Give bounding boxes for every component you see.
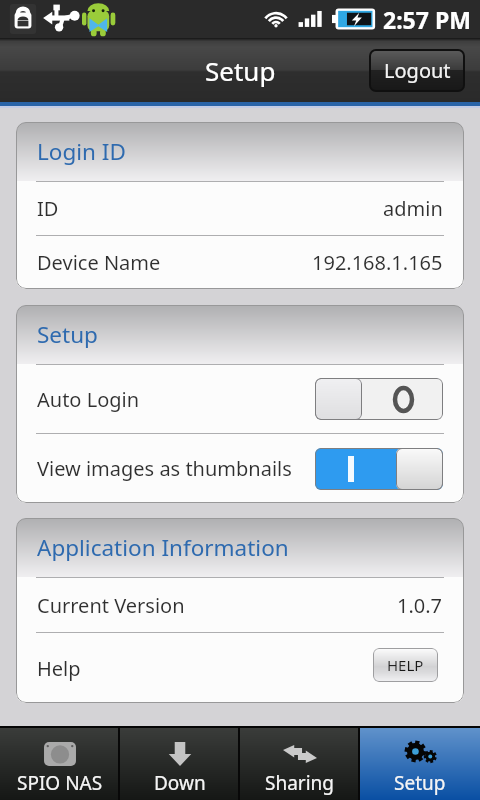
button[interactable]: Sharing xyxy=(240,728,360,800)
button[interactable]: Logout xyxy=(371,51,463,90)
button[interactable]: Device Name xyxy=(16,235,464,289)
other: Sharing xyxy=(283,745,317,763)
staticText: admin xyxy=(383,195,443,222)
other: SPIO NAS xyxy=(43,742,77,766)
button[interactable]: Current Version xyxy=(16,577,464,632)
staticText: 192.168.1.165 xyxy=(312,249,443,276)
staticText: Setup xyxy=(205,53,276,88)
staticText: View images as thumbnails xyxy=(37,455,292,482)
staticText: Login ID xyxy=(37,136,126,167)
staticText: Setup xyxy=(394,770,446,796)
staticText: SPIO NAS xyxy=(17,770,103,796)
staticText: Logout xyxy=(384,57,451,84)
staticText: Sharing xyxy=(265,770,335,796)
staticText: 2:57 PM xyxy=(383,4,471,35)
staticText: Device Name xyxy=(37,249,161,276)
button[interactable]: Help xyxy=(16,632,464,703)
staticText: ID xyxy=(37,195,59,222)
staticText: HELP xyxy=(387,655,424,675)
button[interactable]: Setup xyxy=(360,728,480,800)
other: Setup xyxy=(401,738,439,770)
button[interactable]: HELP xyxy=(373,648,438,682)
staticText: Setup xyxy=(37,319,98,350)
button[interactable] xyxy=(315,378,443,420)
staticText: Application Information xyxy=(37,532,289,563)
button[interactable]: SPIO NAS xyxy=(0,728,120,800)
staticText: Auto Login xyxy=(37,386,140,413)
staticText: 1.0.7 xyxy=(397,592,443,619)
button[interactable]: Auto Login xyxy=(16,364,464,433)
staticText: Help xyxy=(37,655,81,682)
staticText: Current Version xyxy=(37,592,185,619)
other: Down xyxy=(168,742,192,766)
staticText: Down xyxy=(154,770,206,796)
button[interactable]: Down xyxy=(120,728,240,800)
button[interactable] xyxy=(315,448,443,490)
button[interactable]: ID xyxy=(16,181,464,235)
button[interactable]: View images as thumbnails xyxy=(16,433,464,503)
